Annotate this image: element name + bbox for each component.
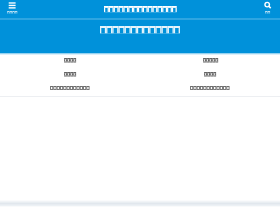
button[interactable]: Search xyxy=(259,0,277,15)
button[interactable]: Menu xyxy=(3,0,21,15)
button[interactable] xyxy=(0,53,140,96)
button[interactable] xyxy=(140,53,280,96)
